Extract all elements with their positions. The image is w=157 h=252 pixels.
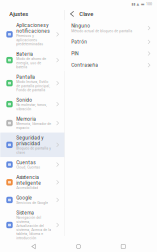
staticText: Cloud, Cuentas <box>16 165 40 169</box>
staticText: ▮▮ <box>131 2 135 6</box>
button[interactable]: Recientes <box>112 241 134 251</box>
staticText: Permisos y aplicaciones predeterminadas <box>16 34 43 46</box>
staticText: Clave <box>79 11 93 17</box>
staticText: Batería <box>16 51 33 57</box>
staticText: Google <box>16 195 32 201</box>
button[interactable]: Atrás <box>23 241 45 251</box>
button[interactable]: Memoria <box>0 114 64 132</box>
button[interactable]: Aplicaciones y notificaciones <box>0 20 64 49</box>
staticText: Asistencia inteligente <box>16 175 41 186</box>
staticText: Sonido <box>16 97 32 103</box>
button[interactable]: PIN <box>64 48 157 59</box>
staticText: Método actual de bloqueo de pantalla <box>71 29 132 33</box>
staticText: Cuentas <box>16 160 35 165</box>
button[interactable]: Batería <box>0 49 64 72</box>
staticText: Seguridad y privacidad <box>16 135 43 146</box>
button[interactable]: Ninguno <box>64 20 157 36</box>
staticText: Ninguno <box>71 23 90 29</box>
staticText: PIN <box>71 51 78 56</box>
staticText: Aplicaciones y notificaciones <box>16 23 49 34</box>
staticText: No molestar, tonos, vibración <box>16 103 47 111</box>
staticText: Pantalla <box>16 74 35 80</box>
button[interactable]: Pantalla <box>0 72 64 95</box>
staticText: Bloqueo de pantalla y clave <box>16 146 51 154</box>
staticText: Memoria, liberador de espacio <box>16 122 51 130</box>
button[interactable]: Asistencia inteligente <box>0 172 64 192</box>
staticText: Modo de ahorro de energía, uso de baterí… <box>16 57 46 69</box>
staticText: Sistema <box>16 210 34 216</box>
button[interactable]: Inicio <box>67 241 89 251</box>
button[interactable]: Patrón <box>64 36 157 48</box>
staticText: ▲ <box>137 2 140 6</box>
button[interactable]: Atrás <box>64 8 79 20</box>
staticText: Servicios de Google <box>16 201 48 205</box>
button[interactable]: Sistema <box>0 207 64 243</box>
staticText: Ajustes <box>9 11 28 17</box>
staticText: ▬ <box>141 2 145 6</box>
button[interactable]: Cuentas <box>0 157 64 172</box>
staticText: Modo lectura, Estilo de pantalla princip… <box>16 80 50 92</box>
staticText: Accesibilidad <box>16 186 38 190</box>
staticText: Patrón <box>71 39 87 45</box>
button[interactable]: Google <box>0 192 64 207</box>
staticText: Navegación del sistema, Actualización de… <box>16 216 51 240</box>
button[interactable]: Contraseña <box>64 59 157 71</box>
button[interactable]: Seguridad y privacidad <box>0 132 64 157</box>
staticText: 100 <box>146 2 152 6</box>
staticText: Contraseña <box>71 62 98 68</box>
button[interactable]: Sonido <box>0 95 64 114</box>
staticText: Memoria <box>16 116 36 122</box>
